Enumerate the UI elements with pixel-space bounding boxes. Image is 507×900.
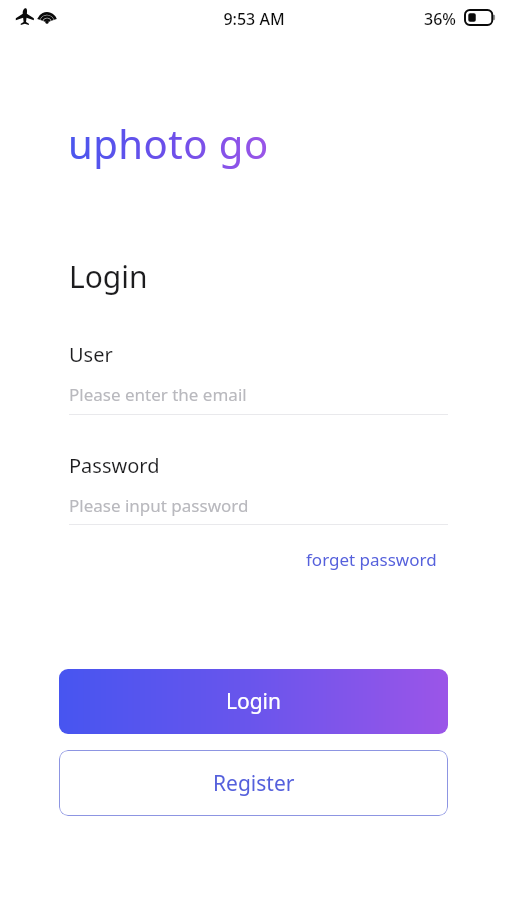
staticText: Login	[226, 687, 282, 716]
button[interactable]: Login	[59, 669, 448, 734]
button[interactable]: forget password	[300, 544, 443, 575]
staticText: Password	[69, 452, 160, 479]
staticText: forget password	[306, 548, 437, 571]
staticText: User	[69, 341, 113, 368]
staticText: 9:53 AM	[223, 8, 285, 30]
button[interactable]: Please input password	[69, 494, 448, 517]
staticText: uphoto go	[68, 116, 269, 170]
staticText: 36%	[424, 8, 456, 30]
staticText: Login	[69, 256, 148, 297]
other: Wi-Fi	[38, 9, 56, 23]
other: Battery 36 percent	[465, 10, 496, 25]
staticText: Please input password	[69, 494, 249, 517]
staticText: Please enter the email	[69, 383, 247, 406]
button[interactable]: Register	[59, 750, 448, 816]
button[interactable]: Please enter the email	[69, 383, 448, 406]
other: Airplane mode	[17, 8, 34, 25]
staticText: Register	[213, 769, 295, 798]
